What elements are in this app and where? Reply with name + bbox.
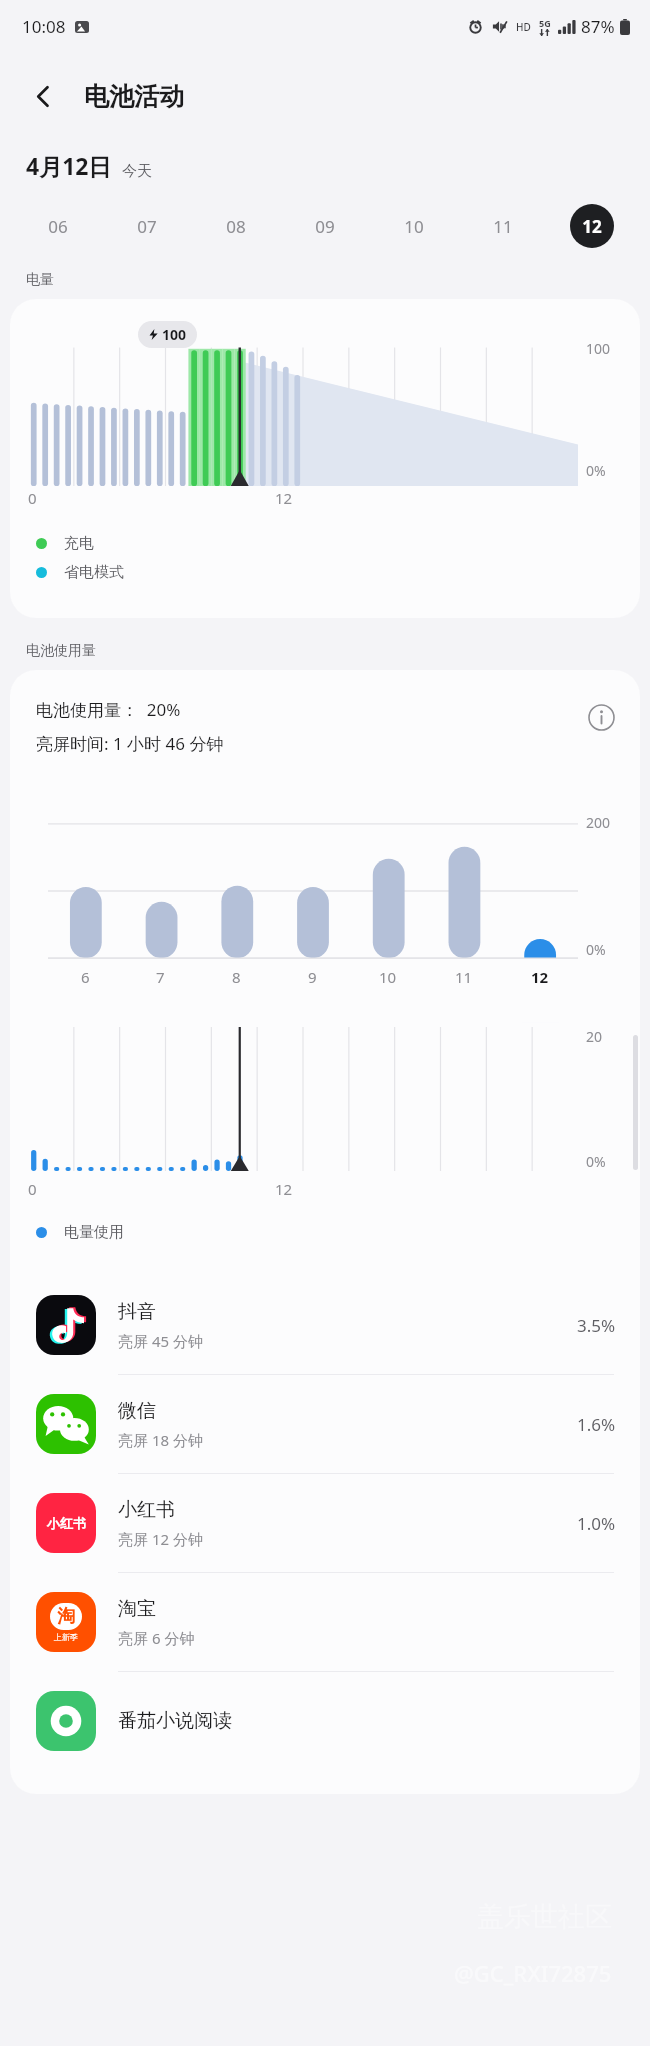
staticText: 8 <box>232 967 241 987</box>
staticText: 淘宝 <box>118 1597 156 1621</box>
button[interactable]: 番茄小说阅读 <box>10 1672 640 1770</box>
staticText: 10:08 <box>22 15 66 38</box>
button[interactable]: 07 <box>102 201 191 251</box>
button[interactable]: Back <box>16 69 70 123</box>
staticText: 省电模式 <box>64 563 124 582</box>
button[interactable]: 淘 <box>10 1573 640 1671</box>
staticText: 电量使用 <box>64 1223 124 1242</box>
staticText: 87% <box>581 15 615 38</box>
staticText: 1.6% <box>577 1413 616 1436</box>
staticText: 08 <box>226 215 246 238</box>
staticText: 06 <box>48 215 68 238</box>
staticText: 电池活动 <box>84 81 184 112</box>
button[interactable]: 100 <box>10 299 640 618</box>
staticText: 07 <box>137 215 157 238</box>
button[interactable]: 抖音 <box>10 1276 640 1374</box>
staticText: 100 <box>586 339 611 358</box>
button[interactable]: 充电 <box>36 534 640 553</box>
staticText: 淘 <box>57 1605 75 1628</box>
staticText: 4月12日 <box>26 150 112 181</box>
staticText: 小红书 <box>118 1498 175 1522</box>
staticText: 1.0% <box>577 1512 616 1535</box>
staticText: 0% <box>586 1152 606 1171</box>
button[interactable]: 08 <box>191 201 280 251</box>
button[interactable]: 12 <box>547 201 636 251</box>
button[interactable]: 11 <box>458 201 547 251</box>
staticText: 抖音 <box>118 1300 156 1324</box>
staticText: 充电 <box>64 534 94 553</box>
staticText: 0 <box>28 1179 37 1199</box>
button[interactable]: 电量使用 <box>36 1223 640 1242</box>
staticText: 亮屏时间: 1 小时 46 分钟 <box>36 732 224 755</box>
button[interactable]: 10 <box>369 201 458 251</box>
staticText: 11 <box>493 215 513 238</box>
staticText: 9 <box>308 967 317 987</box>
staticText: 亮屏 18 分钟 <box>118 1430 203 1450</box>
staticText: 亮屏 45 分钟 <box>118 1331 203 1351</box>
staticText: 0% <box>586 940 606 959</box>
staticText: 100 <box>162 325 187 344</box>
staticText: 微信 <box>118 1399 156 1423</box>
staticText: 12 <box>275 1179 293 1199</box>
staticText: 3.5% <box>577 1314 616 1337</box>
staticText: 0 <box>28 488 37 508</box>
staticText: 番茄小说阅读 <box>118 1709 232 1733</box>
staticText: 20 <box>586 1027 603 1046</box>
button[interactable]: 省电模式 <box>36 563 640 582</box>
staticText: 5G <box>539 17 551 29</box>
staticText: 200 <box>586 813 611 832</box>
button[interactable]: 06 <box>14 201 102 251</box>
staticText: 6 <box>81 967 90 987</box>
staticText: 10 <box>379 967 397 987</box>
button[interactable]: Info <box>582 698 620 736</box>
staticText: 亮屏 12 分钟 <box>118 1529 203 1549</box>
staticText: 12 <box>275 488 293 508</box>
staticText: 电量 <box>26 271 54 289</box>
button[interactable]: 小红书 <box>10 1474 640 1572</box>
staticText: 12 <box>582 215 602 238</box>
staticText: 电池使用量 <box>26 642 96 660</box>
button[interactable]: 微信 <box>10 1375 640 1473</box>
staticText: 10 <box>404 215 424 238</box>
staticText: 小红书 <box>47 1515 86 1531</box>
staticText: 7 <box>156 967 165 987</box>
staticText: 上新季 <box>54 1632 78 1642</box>
staticText: 今天 <box>122 162 152 181</box>
staticText: 电池使用量： 20% <box>36 698 181 721</box>
staticText: 09 <box>315 215 335 238</box>
staticText: 亮屏 6 分钟 <box>118 1628 195 1648</box>
staticText: 0% <box>586 461 606 480</box>
staticText: HD <box>516 20 531 34</box>
button[interactable]: 09 <box>280 201 369 251</box>
staticText: 11 <box>455 967 473 987</box>
staticText: 12 <box>531 967 549 987</box>
